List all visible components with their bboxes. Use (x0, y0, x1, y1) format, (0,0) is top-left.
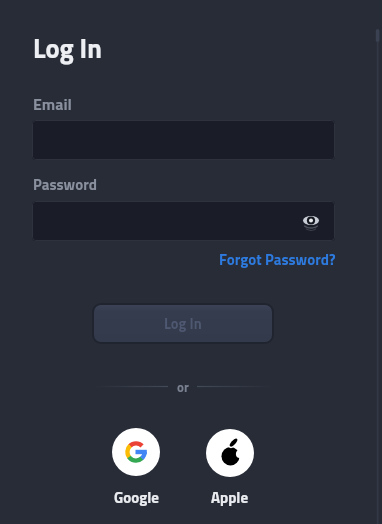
button[interactable]: Log In (94, 305, 272, 342)
button[interactable]: Google (114, 486, 159, 509)
button[interactable] (112, 428, 160, 476)
button[interactable] (206, 429, 254, 477)
button[interactable] (301, 208, 321, 234)
button[interactable] (32, 201, 335, 241)
button[interactable]: Forgot Password? (219, 248, 336, 271)
staticText: Log In (164, 313, 202, 335)
button[interactable] (32, 120, 335, 160)
staticText: Password (33, 173, 97, 196)
staticText: or (177, 377, 189, 397)
button[interactable]: Apple (211, 486, 249, 509)
staticText: Email (33, 92, 72, 116)
staticText: Log In (33, 28, 102, 68)
